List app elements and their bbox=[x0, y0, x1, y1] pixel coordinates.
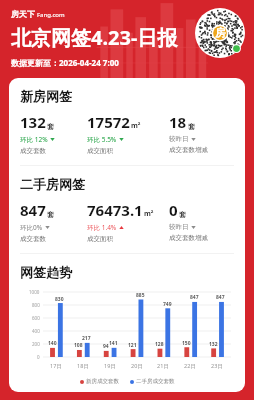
staticText: 76473.1 bbox=[87, 200, 143, 220]
button[interactable]: 18 bbox=[169, 112, 208, 154]
staticText: 21日 bbox=[157, 362, 169, 370]
staticText: 成交套数增减 bbox=[169, 234, 208, 242]
staticText: 847 bbox=[20, 200, 46, 220]
staticText: 94 bbox=[103, 343, 109, 350]
staticText: 环比 5.5% bbox=[87, 135, 117, 144]
staticText: Fang.com bbox=[37, 11, 65, 19]
staticText: 150 bbox=[182, 340, 191, 347]
staticText: 0 bbox=[169, 200, 178, 220]
staticText: 400 bbox=[32, 328, 40, 334]
staticText: 749 bbox=[163, 301, 172, 308]
staticText: 套 bbox=[47, 122, 54, 131]
staticText: 830 bbox=[55, 296, 64, 303]
staticText: 800 bbox=[32, 302, 40, 308]
staticText: 北京网签4.23-日报 bbox=[11, 24, 178, 51]
staticText: 套 bbox=[47, 210, 54, 219]
staticText: 较昨日 bbox=[169, 223, 189, 231]
staticText: 环比 12% bbox=[20, 135, 48, 144]
staticText: 132 bbox=[20, 112, 46, 132]
staticText: 较昨日 bbox=[169, 135, 189, 143]
staticText: 19日 bbox=[104, 362, 116, 370]
staticText: 121 bbox=[128, 342, 137, 349]
button[interactable]: 847 bbox=[20, 200, 54, 243]
staticText: 132 bbox=[209, 341, 218, 348]
staticText: 847 bbox=[216, 294, 225, 301]
staticText: 18日 bbox=[77, 362, 89, 370]
staticText: 房 bbox=[215, 26, 226, 40]
staticText: 17日 bbox=[50, 362, 62, 370]
staticText: 房天下 bbox=[11, 9, 35, 19]
button[interactable]: 0 bbox=[169, 200, 208, 242]
button[interactable]: 17572 bbox=[87, 112, 141, 155]
staticText: 环比 1.4% bbox=[87, 223, 117, 232]
staticText: m² bbox=[131, 121, 141, 131]
button[interactable]: 76473.1 bbox=[87, 200, 154, 243]
staticText: 600 bbox=[32, 315, 40, 321]
staticText: 140 bbox=[48, 340, 57, 347]
staticText: 141 bbox=[109, 340, 118, 347]
staticText: 847 bbox=[190, 294, 199, 301]
staticText: 108 bbox=[74, 342, 83, 349]
staticText: 环比0% bbox=[20, 223, 43, 232]
staticText: 新房网签 bbox=[20, 88, 72, 104]
button[interactable]: 二手房成交套数 bbox=[130, 378, 175, 385]
staticText: 200 bbox=[32, 341, 40, 347]
staticText: 网签趋势 bbox=[20, 264, 72, 280]
staticText: 套 bbox=[188, 122, 195, 131]
staticText: 二手房网签 bbox=[20, 176, 85, 192]
staticText: 1000 bbox=[29, 289, 40, 295]
staticText: 成交面积 bbox=[87, 235, 113, 243]
staticText: 217 bbox=[82, 335, 91, 342]
staticText: m² bbox=[144, 209, 154, 219]
staticText: 成交套数 bbox=[20, 147, 46, 155]
staticText: 885 bbox=[136, 292, 145, 299]
staticText: 128 bbox=[155, 341, 164, 348]
staticText: 20日 bbox=[131, 362, 143, 370]
button[interactable]: 132 bbox=[20, 112, 55, 155]
staticText: 23日 bbox=[211, 362, 223, 370]
staticText: 成交面积 bbox=[87, 147, 113, 155]
staticText: 新房成交套数 bbox=[86, 378, 119, 385]
staticText: 成交套数 bbox=[20, 235, 46, 243]
staticText: 0 bbox=[37, 354, 40, 360]
staticText: 二手房成交套数 bbox=[136, 378, 175, 385]
staticText: 成交套数增减 bbox=[169, 146, 208, 154]
staticText: 22日 bbox=[184, 362, 196, 370]
staticText: 套 bbox=[179, 210, 186, 219]
staticText: 18 bbox=[169, 112, 187, 132]
button[interactable]: 新房成交套数 bbox=[80, 378, 119, 385]
staticText: 17572 bbox=[87, 112, 130, 132]
staticText: 数据更新至：2026-04-24 7:00 bbox=[11, 57, 119, 68]
button[interactable]: 扫码二维码 bbox=[195, 8, 245, 58]
